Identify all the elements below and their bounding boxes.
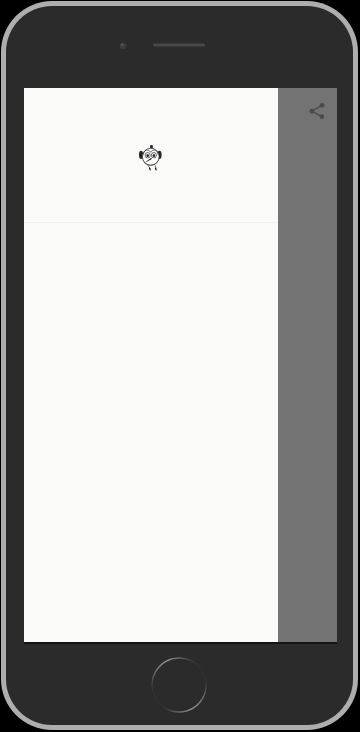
button[interactable]: Share (305, 99, 329, 123)
